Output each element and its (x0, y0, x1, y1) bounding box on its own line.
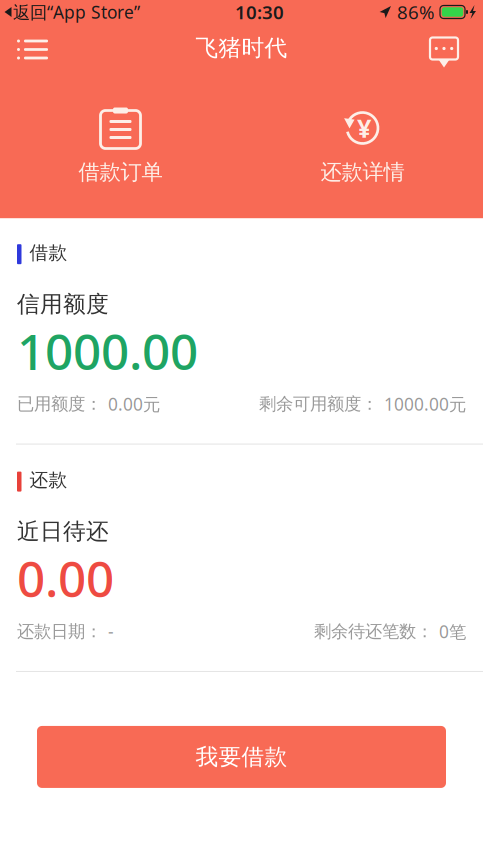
staticText: 信用额度 (17, 290, 109, 318)
staticText: 飞猪时代 (195, 34, 287, 62)
staticText: 0.00元 (108, 393, 160, 416)
staticText: 0.00 (17, 545, 114, 611)
staticText: 借款订单 (78, 159, 162, 185)
staticText: 我要借款 (195, 743, 287, 771)
staticText: 86% (397, 0, 435, 24)
staticText: 还款日期： (17, 621, 102, 642)
staticText: 返回“App Store” (13, 0, 140, 23)
button[interactable]: Messages (416, 20, 483, 76)
staticText: - (108, 620, 114, 643)
button[interactable]: 我要借款 (37, 726, 446, 788)
staticText: 1000.00元 (384, 393, 466, 416)
staticText: 剩余待还笔数： (314, 621, 433, 642)
staticText: 已用额度： (17, 393, 102, 415)
staticText: 还款详情 (320, 159, 404, 185)
staticText: 1000.00 (17, 318, 198, 383)
staticText: 剩余可用额度： (259, 393, 378, 415)
staticText: 近日待还 (17, 518, 109, 545)
staticText: 10:30 (235, 0, 284, 24)
staticText: 0笔 (439, 620, 466, 643)
button[interactable]: ¥ (277, 107, 447, 185)
staticText: ¥ (357, 111, 371, 145)
button[interactable]: 借款订单 (35, 107, 205, 185)
staticText: 借款 (29, 241, 67, 264)
staticText: 还款 (29, 469, 67, 491)
button[interactable]: Menu (0, 22, 62, 73)
